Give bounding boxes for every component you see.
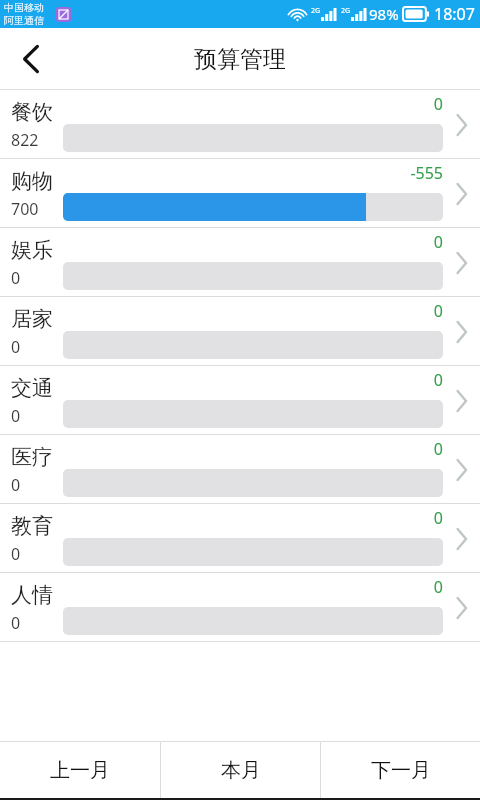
staticText: 人情 [11,582,53,608]
button[interactable]: 上一月 [0,742,160,798]
staticText: -555 [410,162,443,184]
button[interactable]: 购物 [0,159,480,228]
staticText: 医疗 [11,444,53,470]
staticText: 0 [433,438,443,460]
staticText: 0 [433,231,443,253]
staticText: 预算管理 [194,45,286,74]
staticText: 0 [11,474,21,496]
staticText: 本月 [221,758,261,783]
staticText: 0 [433,369,443,391]
staticText: 居家 [11,306,53,332]
staticText: 上一月 [50,758,110,783]
button[interactable]: 居家 [0,297,480,366]
staticText: 交通 [11,375,53,401]
button[interactable]: 交通 [0,366,480,435]
button[interactable]: 娱乐 [0,228,480,297]
staticText: 0 [433,93,443,115]
staticText: 0 [11,336,21,358]
staticText: 0 [433,576,443,598]
staticText: 0 [433,300,443,322]
button[interactable]: Back [0,28,62,90]
staticText: 餐饮 [11,99,53,125]
button[interactable]: 下一月 [321,742,480,798]
staticText: 下一月 [371,758,431,783]
staticText: 822 [11,129,39,151]
button[interactable]: 餐饮 [0,90,480,159]
staticText: 教育 [11,513,53,539]
staticText: 98% [369,4,399,24]
staticText: 0 [11,543,21,565]
button[interactable]: 医疗 [0,435,480,504]
button[interactable]: 人情 [0,573,480,642]
staticText: 娱乐 [11,237,53,263]
staticText: 0 [433,507,443,529]
staticText: 购物 [11,168,53,194]
staticText: 700 [11,198,39,220]
staticText: 阿里通信 [4,14,44,27]
staticText: 0 [11,405,21,427]
staticText: 0 [11,267,21,289]
staticText: 中国移动 [4,1,44,14]
button[interactable]: 教育 [0,504,480,573]
staticText: 2G [341,6,351,16]
staticText: 18:07 [434,3,475,25]
button[interactable]: 本月 [161,742,320,798]
staticText: 0 [11,612,21,634]
staticText: 2G [311,6,321,16]
